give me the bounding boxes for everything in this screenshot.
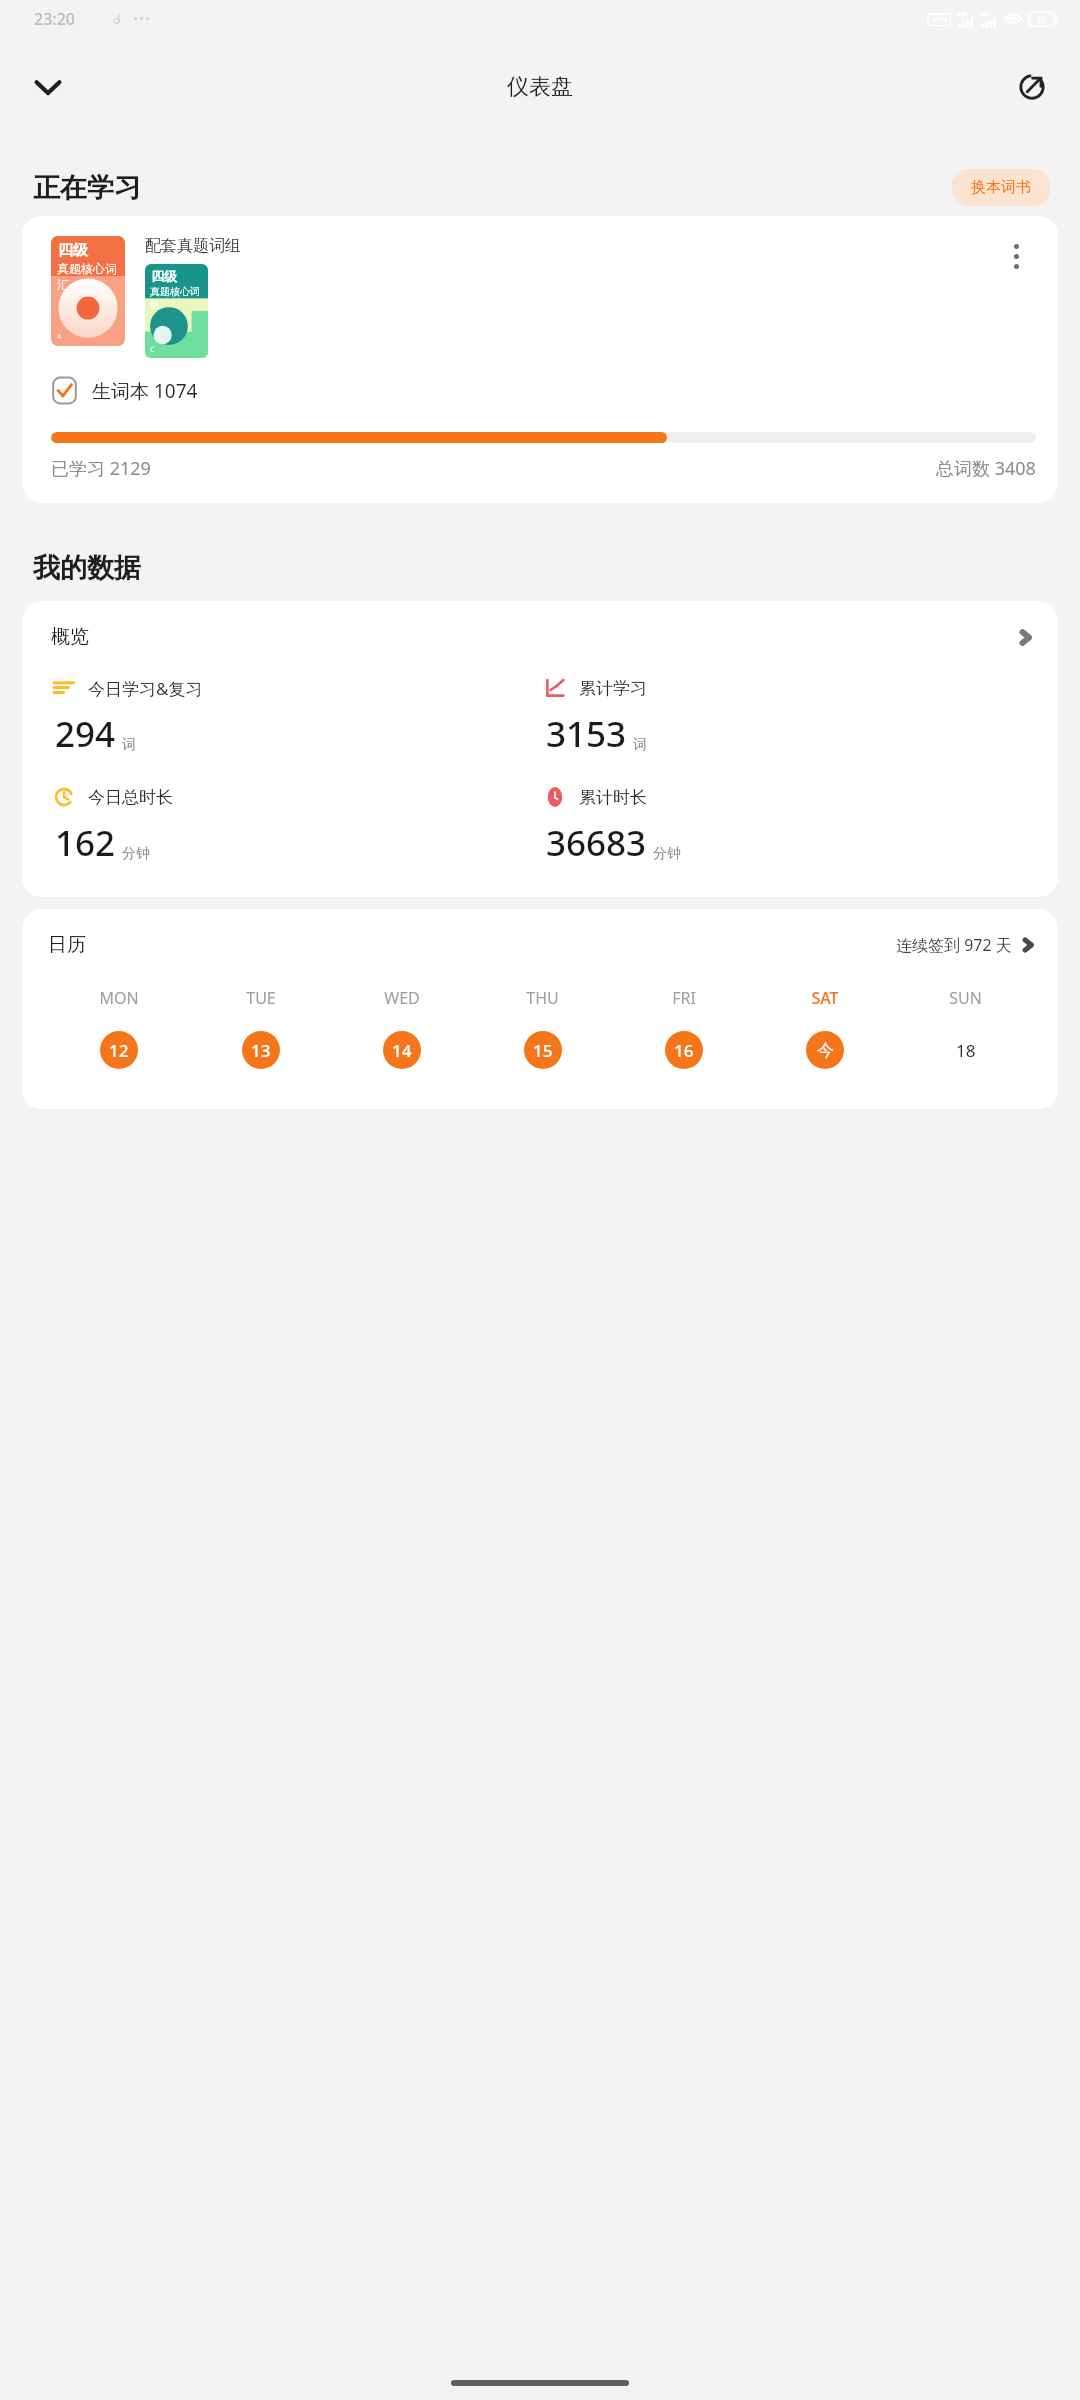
staticText: 今日学习&复习 bbox=[88, 677, 203, 700]
staticText: 分钟 bbox=[653, 845, 681, 863]
staticText: 概览 bbox=[51, 625, 89, 649]
staticText: 36683 bbox=[546, 819, 647, 867]
staticText: FRI bbox=[672, 987, 696, 1009]
staticText: 69 bbox=[1037, 14, 1047, 25]
staticText: 15 bbox=[533, 1039, 553, 1062]
staticText: HD bbox=[981, 10, 990, 18]
button[interactable]: 今日总时长 bbox=[51, 784, 542, 867]
staticText: 今 bbox=[817, 1040, 834, 1061]
staticText: 3153 bbox=[546, 710, 627, 758]
staticText: 四级 bbox=[58, 241, 88, 260]
staticText: SAT bbox=[811, 987, 839, 1009]
staticText: 正在学习 bbox=[33, 171, 141, 205]
staticText: 分钟 bbox=[122, 845, 150, 863]
button[interactable]: 今 bbox=[806, 1031, 844, 1069]
staticText: 18 bbox=[956, 1039, 976, 1062]
staticText: 4 bbox=[57, 332, 62, 342]
staticText: 16 bbox=[674, 1039, 694, 1062]
staticText: 162 bbox=[55, 819, 116, 867]
staticText: 换本词书 bbox=[971, 178, 1031, 197]
button[interactable]: Collapse bbox=[20, 59, 76, 115]
staticText: HD bbox=[958, 10, 967, 18]
button[interactable]: 累计时长 bbox=[542, 784, 1034, 867]
button[interactable]: 四级 bbox=[22, 216, 1058, 503]
button[interactable]: 14 bbox=[383, 1031, 421, 1069]
button[interactable]: 连续签到 972 天 bbox=[896, 934, 1036, 956]
staticText: 生词本 1074 bbox=[92, 378, 198, 404]
button[interactable]: 18 bbox=[947, 1031, 985, 1069]
staticText: SUN bbox=[949, 987, 982, 1009]
staticText: 总词数 3408 bbox=[936, 456, 1036, 481]
staticText: VPN bbox=[932, 15, 947, 25]
button[interactable]: 累计学习 bbox=[542, 675, 1034, 758]
staticText: 294 bbox=[55, 710, 116, 758]
staticText: C bbox=[150, 345, 155, 355]
button[interactable]: 生词本 1074 bbox=[51, 377, 198, 404]
button[interactable]: 13 bbox=[242, 1031, 280, 1069]
staticText: 我的数据 bbox=[33, 551, 141, 585]
staticText: 四级 bbox=[151, 268, 177, 284]
staticText: 12 bbox=[109, 1039, 129, 1062]
staticText: 14 bbox=[392, 1039, 412, 1062]
button[interactable]: More options bbox=[996, 236, 1036, 276]
staticText: MON bbox=[99, 987, 139, 1009]
staticText: 13 bbox=[251, 1039, 271, 1062]
staticText: 真题核心词汇 bbox=[57, 261, 125, 293]
staticText: 日历 bbox=[48, 933, 86, 957]
button[interactable]: 概览 bbox=[51, 625, 1034, 649]
staticText: 累计时长 bbox=[579, 787, 647, 808]
button[interactable]: 12 bbox=[100, 1031, 138, 1069]
staticText: 词 bbox=[122, 736, 136, 754]
button[interactable]: 15 bbox=[524, 1031, 562, 1069]
button[interactable]: 今日学习&复习 bbox=[51, 675, 542, 758]
staticText: 连续签到 972 天 bbox=[896, 934, 1012, 956]
staticText: 累计学习 bbox=[579, 678, 647, 699]
staticText: 今日总时长 bbox=[88, 787, 173, 808]
button[interactable]: 16 bbox=[665, 1031, 703, 1069]
staticText: 23:20 bbox=[34, 8, 75, 30]
button[interactable]: Share bbox=[1004, 59, 1060, 115]
staticText: 已学习 2129 bbox=[51, 456, 151, 481]
button[interactable]: 换本词书 bbox=[952, 169, 1050, 206]
staticText: THU bbox=[526, 987, 559, 1009]
staticText: 仪表盘 bbox=[507, 73, 573, 101]
staticText: TUE bbox=[246, 987, 276, 1009]
staticText: 词 bbox=[633, 736, 647, 754]
staticText: WED bbox=[384, 987, 420, 1009]
staticText: 配套真题词组 bbox=[145, 236, 241, 256]
staticText: 真题核心词组 bbox=[150, 285, 208, 311]
